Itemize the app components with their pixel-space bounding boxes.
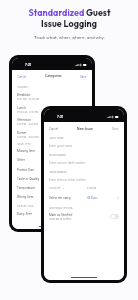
staticText: COURSES [17, 86, 29, 89]
button[interactable]: Afternoon [12, 116, 92, 128]
staticText: GUEST NAME [49, 137, 64, 140]
button[interactable]: Taste or Quality [12, 175, 92, 184]
staticText: DIETARY TAGS [17, 205, 34, 208]
staticText: 6:00 AM - 10:00 AM [17, 98, 39, 101]
button[interactable]: Other [12, 156, 92, 165]
button[interactable]: Mark as Notified [44, 212, 124, 224]
staticText: Dairy-Free [17, 212, 32, 216]
staticText: Track what, when, where, and why. [34, 34, 105, 40]
button[interactable]: Lunch [12, 104, 92, 116]
button[interactable]: Cancel [17, 75, 27, 78]
staticText: Wrong Item [17, 195, 34, 199]
staticText: Enter room or table number [49, 161, 86, 164]
staticText: Standardized Guest [28, 7, 111, 18]
button[interactable]: All Days [87, 196, 119, 199]
staticText: Breakfast [17, 93, 31, 97]
button[interactable]: Cancel [49, 127, 59, 130]
staticText: 11:00 AM - 2:00 PM [17, 111, 39, 114]
staticText: Categories [45, 74, 62, 78]
staticText: Taste or Quality [17, 177, 40, 181]
staticText: 2:00 PM - 5:00 PM [17, 123, 38, 126]
button[interactable]: Dairy-Free [12, 210, 92, 219]
button[interactable]: Select the categ... [49, 196, 73, 199]
staticText: • [63, 187, 65, 190]
staticText: ISSUE TYPE [17, 143, 31, 146]
button[interactable]: Mark as notified toggle [110, 214, 119, 219]
staticText: New Issue [77, 127, 93, 131]
staticText: Portion Size [17, 168, 35, 172]
staticText: Temperature [17, 186, 36, 190]
staticText: Missing Item [17, 149, 35, 153]
staticText: Enter order or ticket number [49, 178, 87, 181]
staticText: Afternoon [17, 118, 32, 122]
staticText: ORDER NUMBER [49, 171, 67, 174]
staticText: Enter guest name [49, 144, 73, 147]
button[interactable]: Missing Item [12, 147, 92, 156]
staticText: 5:00 PM - 10:00 PM [17, 136, 39, 139]
staticText: 7:31 [57, 115, 64, 119]
staticText: STATION [87, 187, 97, 190]
staticText: All Days [87, 196, 98, 199]
staticText: CATEGORY [49, 187, 61, 190]
button[interactable]: Dinner [12, 129, 92, 141]
staticText: ROOM NUMBER [49, 154, 66, 157]
staticText: Issue Logging [41, 18, 97, 29]
staticText: 7:31 [25, 63, 32, 67]
button[interactable]: Portion Size [12, 166, 92, 175]
button[interactable]: Save [112, 127, 119, 130]
staticText: Mark as Notified [49, 213, 73, 217]
staticText: Lunch [17, 106, 26, 110]
staticText: Other [17, 158, 25, 162]
staticText: Guest will be notified [49, 218, 71, 221]
button[interactable]: Wrong Item [12, 193, 92, 202]
staticText: Dinner [17, 131, 27, 135]
staticText: ADDITIONAL OPTIONS [49, 207, 73, 210]
button[interactable]: Temperature [12, 184, 92, 193]
button[interactable]: Breakfast [12, 91, 92, 103]
button[interactable]: Save [80, 75, 87, 78]
